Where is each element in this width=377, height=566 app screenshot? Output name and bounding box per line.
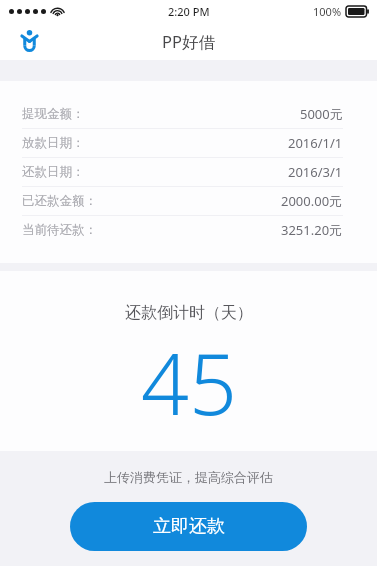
staticText: 3251.20元 [281, 221, 343, 239]
button[interactable]: Account [12, 24, 46, 58]
staticText: 100% [313, 4, 342, 19]
staticText: 已还款金额： [22, 193, 97, 209]
button[interactable]: 立即还款 [70, 502, 307, 551]
staticText: 放款日期： [22, 135, 85, 151]
staticText: 45 [141, 325, 237, 439]
staticText: 2016/3/1 [288, 163, 343, 181]
staticText: 还款日期： [22, 164, 85, 180]
staticText: 2:20 PM [168, 4, 210, 19]
staticText: 2000.00元 [281, 192, 343, 210]
staticText: 还款倒计时（天） [125, 303, 253, 323]
staticText: 2016/1/1 [288, 134, 343, 152]
staticText: 立即还款 [153, 515, 225, 538]
staticText: 当前待还款： [22, 222, 97, 238]
button[interactable]: 上传消费凭证，提高综合评估 [0, 469, 377, 485]
staticText: 提现金额： [22, 106, 85, 122]
staticText: PP好借 [162, 30, 215, 53]
staticText: 5000元 [300, 105, 343, 123]
